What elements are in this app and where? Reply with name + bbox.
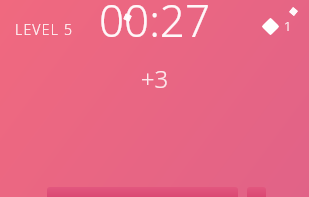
staticText: LEVEL 5 [15,20,74,39]
button[interactable]: LEVEL 5 [15,20,74,39]
button[interactable]: Gems collected [262,13,302,39]
staticText: 00:27 [0,0,309,187]
staticText: 1 [284,17,292,35]
staticText: +3 [0,62,309,197]
